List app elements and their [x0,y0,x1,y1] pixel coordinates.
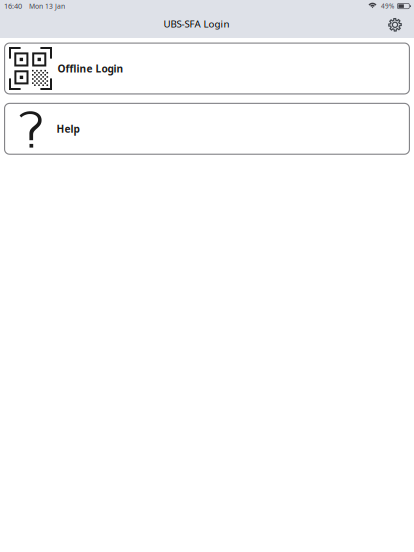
button[interactable]: Offline Login [4,42,410,94]
staticText: Help [56,122,79,136]
staticText: 16:40 [4,1,22,11]
staticText: Mon 13 Jan [29,1,65,11]
staticText: Offline Login [57,62,123,75]
button[interactable]: Help [4,103,410,155]
staticText: UBS-SFA Login [163,17,229,30]
button[interactable]: Settings [382,12,408,37]
staticText: 49% [381,2,394,10]
